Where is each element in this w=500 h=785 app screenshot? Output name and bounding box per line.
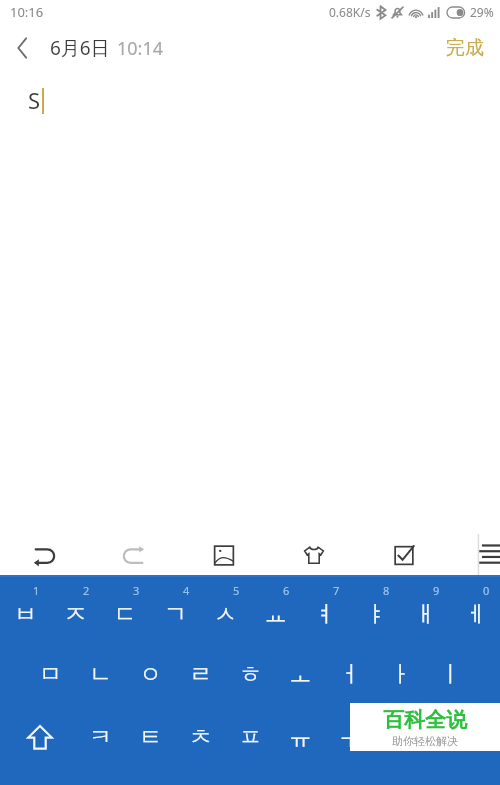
staticText: ㄴ bbox=[89, 660, 112, 689]
staticText: 助你轻松解决 bbox=[392, 734, 458, 748]
staticText: S bbox=[28, 85, 41, 115]
staticText: 10:16 bbox=[10, 3, 44, 21]
button[interactable]: ㅕ bbox=[300, 585, 350, 637]
button[interactable]: ㅋ bbox=[75, 711, 125, 763]
button[interactable]: Undo bbox=[22, 534, 66, 575]
staticText: ㅅ bbox=[214, 600, 237, 629]
button[interactable]: ㅎ bbox=[225, 648, 275, 700]
staticText: ㅕ bbox=[314, 600, 337, 629]
button[interactable]: Checklist bbox=[382, 534, 426, 575]
button[interactable]: ㅜ bbox=[325, 711, 375, 763]
button[interactable]: ㅏ bbox=[375, 648, 425, 700]
staticText: ㅌ bbox=[139, 723, 162, 752]
staticText: ㄱ bbox=[164, 600, 187, 629]
button[interactable]: ㄴ bbox=[75, 648, 125, 700]
button[interactable]: Redo bbox=[112, 534, 156, 575]
staticText: 0.68K/s bbox=[329, 4, 371, 20]
staticText: ㅍ bbox=[239, 723, 262, 752]
staticText: 29% bbox=[470, 4, 494, 20]
staticText: ㅏ bbox=[389, 660, 412, 689]
staticText: 3 bbox=[133, 583, 140, 598]
button[interactable]: ㄱ bbox=[150, 585, 200, 637]
button[interactable]: ㄹ bbox=[175, 648, 225, 700]
staticText: 5 bbox=[233, 583, 240, 598]
staticText: 7 bbox=[333, 583, 340, 598]
staticText: 完成 bbox=[446, 36, 484, 60]
staticText: 6月6日 bbox=[50, 35, 110, 61]
button[interactable]: Style bbox=[292, 534, 336, 575]
button[interactable]: ㅂ bbox=[0, 585, 50, 637]
staticText: 2 bbox=[83, 583, 90, 598]
staticText: ㅑ bbox=[364, 600, 387, 629]
staticText: ㅓ bbox=[339, 660, 362, 689]
staticText: ㅗ bbox=[289, 660, 312, 689]
staticText: 6 bbox=[283, 583, 290, 598]
staticText: ㅇ bbox=[139, 660, 162, 689]
staticText: 4 bbox=[183, 583, 190, 598]
button[interactable]: 完成 bbox=[430, 28, 500, 68]
button[interactable]: ㅗ bbox=[275, 648, 325, 700]
staticText: ㅡ bbox=[389, 723, 412, 752]
staticText: ㄷ bbox=[114, 600, 137, 629]
button[interactable]: ㅔ bbox=[450, 585, 500, 637]
staticText: 8 bbox=[383, 583, 390, 598]
button[interactable]: S bbox=[0, 71, 500, 534]
button[interactable]: ㅠ bbox=[275, 711, 325, 763]
button[interactable]: ㅌ bbox=[125, 711, 175, 763]
button[interactable]: ㅐ bbox=[400, 585, 450, 637]
button[interactable]: Back bbox=[0, 26, 44, 70]
staticText: ㅈ bbox=[64, 600, 87, 629]
staticText: ㅋ bbox=[89, 723, 112, 752]
staticText: 0 bbox=[483, 583, 490, 598]
staticText: ㅣ bbox=[439, 660, 462, 689]
button[interactable]: ㅇ bbox=[125, 648, 175, 700]
button[interactable]: ㅓ bbox=[325, 648, 375, 700]
staticText: 1 bbox=[33, 583, 40, 598]
button[interactable]: Backspace bbox=[435, 711, 490, 763]
button[interactable]: More bbox=[478, 534, 500, 575]
button[interactable]: ㅛ bbox=[250, 585, 300, 637]
button[interactable]: ㅑ bbox=[350, 585, 400, 637]
staticText: 10:14 bbox=[117, 36, 164, 61]
button[interactable]: ㅊ bbox=[175, 711, 225, 763]
staticText: ㅠ bbox=[289, 723, 312, 752]
staticText: ㅜ bbox=[339, 723, 362, 752]
staticText: ㅔ bbox=[464, 600, 487, 629]
button[interactable]: ㅅ bbox=[200, 585, 250, 637]
button[interactable]: ㅁ bbox=[25, 648, 75, 700]
button[interactable]: ㄷ bbox=[100, 585, 150, 637]
button[interactable]: ㅍ bbox=[225, 711, 275, 763]
staticText: 9 bbox=[433, 583, 440, 598]
staticText: 百科全说 bbox=[383, 707, 467, 733]
staticText: ㅊ bbox=[189, 723, 212, 752]
staticText: ㄹ bbox=[189, 660, 212, 689]
button[interactable]: Insert image bbox=[202, 534, 246, 575]
button[interactable]: ㅈ bbox=[50, 585, 100, 637]
button[interactable]: ㅣ bbox=[425, 648, 475, 700]
staticText: ㅐ bbox=[414, 600, 437, 629]
button[interactable]: Shift bbox=[15, 711, 65, 763]
staticText: ㅛ bbox=[264, 600, 287, 629]
staticText: ㅁ bbox=[39, 660, 62, 689]
staticText: ㅂ bbox=[14, 600, 37, 629]
staticText: ㅎ bbox=[239, 660, 262, 689]
button[interactable]: ㅡ bbox=[375, 711, 425, 763]
